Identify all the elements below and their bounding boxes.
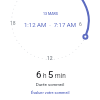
staticText: 1:12 AM · 7:17 AM <box>24 21 76 28</box>
staticText: 6 <box>36 69 42 80</box>
staticText: h <box>43 72 47 80</box>
staticText: 12 <box>47 55 53 61</box>
staticText: Durée sommeil <box>36 82 65 87</box>
button[interactable]: Évaluer votre sommeil <box>31 90 70 95</box>
staticText: 18 <box>10 20 16 26</box>
staticText: min <box>55 72 66 80</box>
staticText: 6 <box>79 21 82 27</box>
staticText: 5 <box>48 69 54 80</box>
staticText: 13 MARS <box>43 12 58 16</box>
staticText: Évaluer votre sommeil <box>31 90 70 95</box>
